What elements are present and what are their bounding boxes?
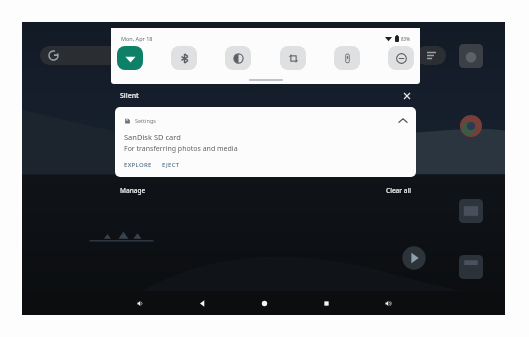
button[interactable]: Recent apps [315, 292, 337, 314]
button[interactable]: Camera [459, 44, 483, 68]
button[interactable]: Search [40, 46, 126, 65]
staticText: 83% [401, 36, 410, 42]
staticText: Settings [135, 117, 156, 124]
button[interactable]: Auto-rotate [280, 46, 306, 70]
button[interactable]: Clear silent notifications [401, 90, 413, 102]
staticText: EXPLORE [124, 161, 152, 169]
staticText: SanDisk SD card [124, 132, 181, 142]
staticText: Silent [120, 91, 139, 101]
staticText: Clear all [386, 186, 411, 195]
button[interactable]: Calculator [459, 255, 483, 279]
button[interactable]: Expand quick settings [249, 79, 283, 81]
button[interactable]: Volume up [377, 292, 399, 314]
button[interactable]: Manage [120, 186, 146, 195]
button[interactable]: Collapse notification [397, 114, 409, 126]
button[interactable]: Back [191, 292, 213, 314]
button[interactable]: Wi-Fi [117, 46, 143, 70]
button[interactable]: Flashlight [334, 46, 360, 70]
button[interactable]: EXPLORE [124, 161, 152, 169]
button[interactable]: Dark theme [225, 46, 251, 70]
button[interactable]: Clear all [386, 186, 411, 195]
button[interactable]: Volume down [129, 292, 151, 314]
button[interactable]: Settings [115, 107, 416, 177]
button[interactable]: Do not disturb [388, 46, 414, 70]
staticText: Manage [120, 186, 146, 195]
button[interactable]: Bluetooth [171, 46, 197, 70]
button[interactable]: EJECT [162, 161, 180, 169]
button[interactable]: Assistant [416, 46, 446, 65]
staticText: Mon, Apr 18 [121, 35, 153, 42]
staticText: For transferring photos and media [124, 144, 238, 154]
button[interactable]: Gallery [459, 199, 483, 223]
button[interactable]: Play Store [401, 245, 427, 271]
staticText: EJECT [162, 161, 180, 169]
button[interactable]: Home [253, 292, 275, 314]
button[interactable]: Chrome [459, 114, 483, 138]
